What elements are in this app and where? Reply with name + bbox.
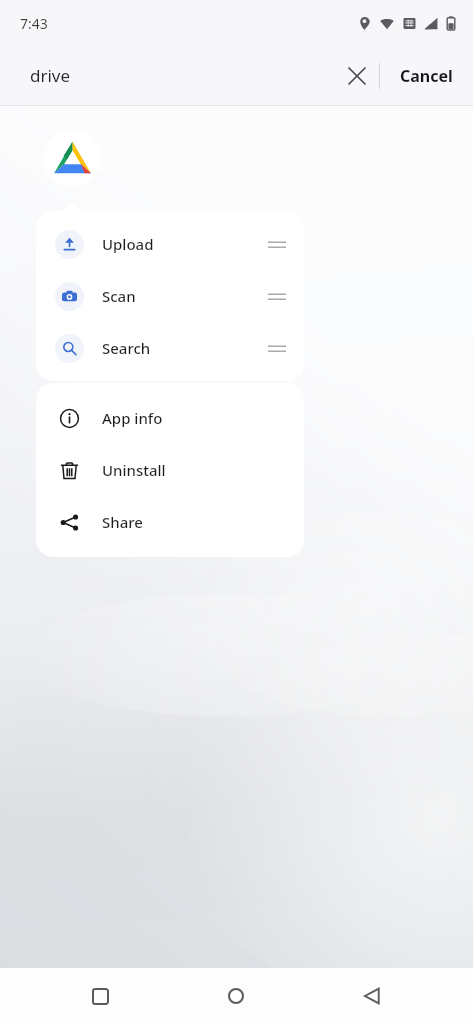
staticText: App info <box>102 408 163 428</box>
button[interactable]: App info <box>36 392 304 444</box>
button[interactable]: Scan <box>36 270 304 322</box>
button[interactable]: Upload <box>36 218 304 270</box>
staticText: Upload <box>102 234 154 254</box>
staticText: Search <box>102 338 151 358</box>
button[interactable]: Drive app icon <box>43 129 101 187</box>
button[interactable]: Back <box>344 968 400 1024</box>
staticText: Share <box>102 512 143 532</box>
staticText: Uninstall <box>102 460 166 480</box>
staticText: 7:43 <box>20 14 48 33</box>
staticText: Cancel <box>400 65 453 87</box>
button[interactable]: Share <box>36 496 304 548</box>
button[interactable]: Search <box>36 322 304 374</box>
button[interactable]: Clear search <box>335 54 379 98</box>
button[interactable]: Cancel <box>380 55 473 97</box>
button[interactable]: Recent apps <box>72 968 128 1024</box>
button[interactable]: Home <box>208 968 264 1024</box>
button[interactable]: Uninstall <box>36 444 304 496</box>
staticText: drive <box>30 64 71 87</box>
staticText: Scan <box>102 286 136 306</box>
